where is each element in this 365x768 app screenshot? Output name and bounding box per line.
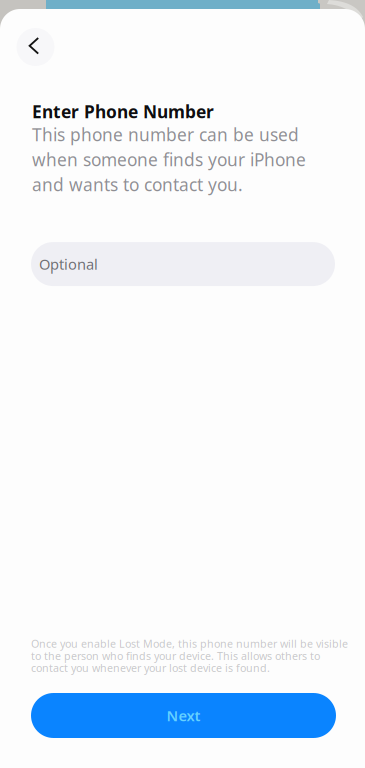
staticText: Optional — [39, 254, 98, 274]
staticText: Next — [166, 706, 200, 725]
button[interactable]: Next — [31, 693, 336, 738]
staticText: Once you enable Lost Mode, this phone nu… — [31, 636, 348, 675]
button[interactable]: Back — [16, 28, 55, 66]
staticText: This phone number can be used when someo… — [32, 123, 306, 196]
staticText: Enter Phone Number — [32, 100, 214, 123]
